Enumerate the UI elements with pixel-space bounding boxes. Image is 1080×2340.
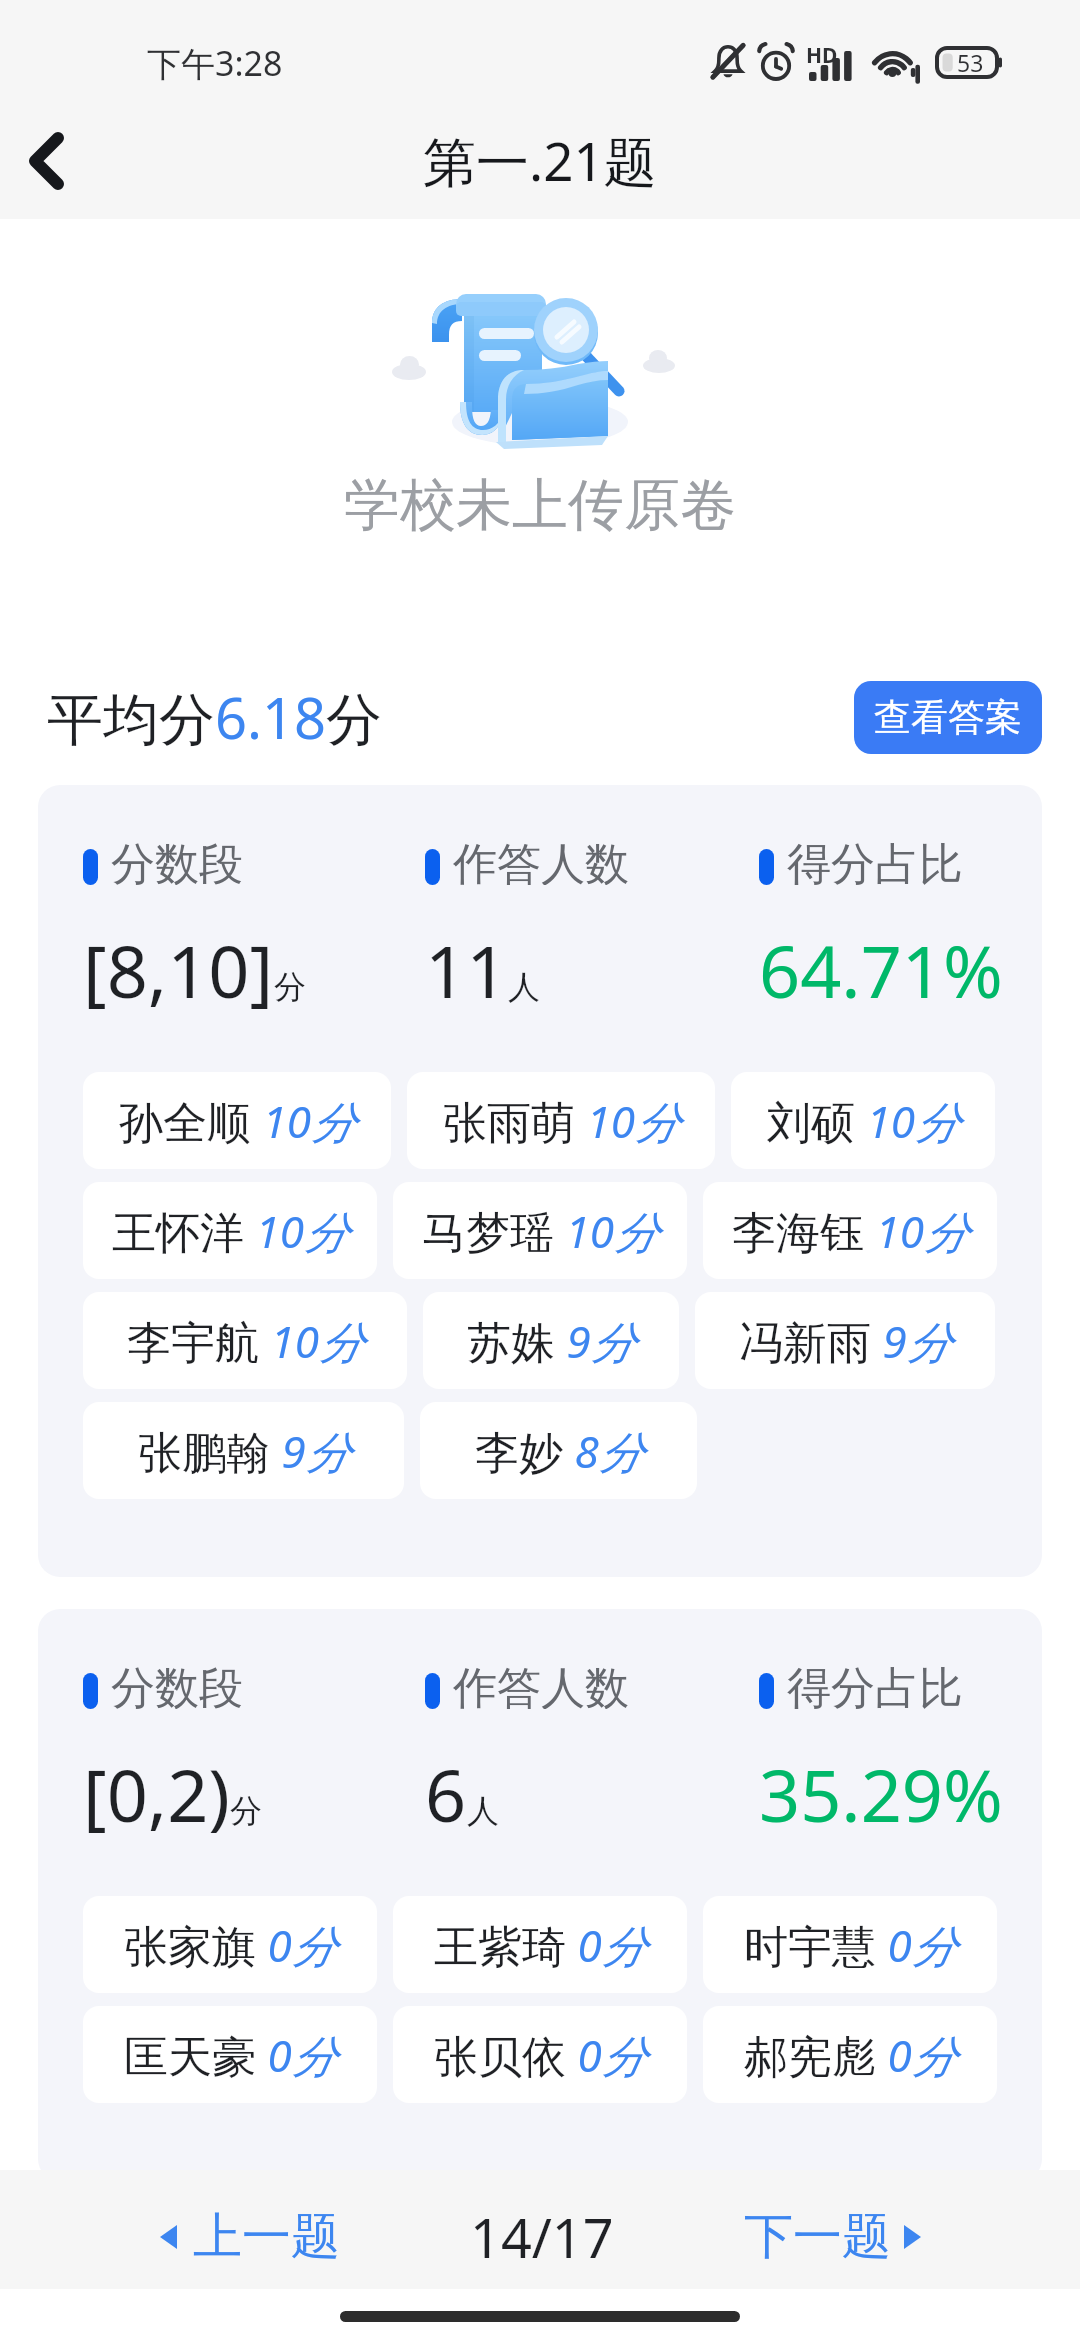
staticText: 分: [274, 967, 306, 1007]
button[interactable]: 郝宪彪 0分: [703, 2006, 997, 2103]
button[interactable]: 李宇航 10分: [83, 1292, 407, 1389]
button[interactable]: 张贝依 0分: [393, 2006, 687, 2103]
staticText: 得分占比: [787, 837, 963, 885]
staticText: 李海钰 10分: [732, 1201, 968, 1261]
staticText: 冯新雨 9分: [739, 1311, 951, 1371]
staticText: 人: [508, 967, 540, 1007]
button[interactable]: 刘硕 10分: [731, 1072, 995, 1169]
staticText: 上一题: [193, 2206, 340, 2268]
staticText: 平均分6.18分: [47, 679, 383, 755]
staticText: 李宇航 10分: [127, 1311, 363, 1371]
staticText: [8,10]: [83, 921, 274, 1019]
staticText: 得分占比: [787, 1661, 963, 1709]
button[interactable]: 孙全顺 10分: [83, 1072, 391, 1169]
staticText: 张贝依 0分: [434, 2025, 646, 2085]
button[interactable]: 上一题: [150, 2184, 350, 2290]
staticText: 64.71%: [759, 921, 1003, 1019]
button[interactable]: 查看答案: [854, 681, 1042, 754]
staticText: 作答人数: [453, 1661, 629, 1709]
button[interactable]: 冯新雨 9分: [695, 1292, 995, 1389]
staticText: 郝宪彪 0分: [744, 2025, 956, 2085]
button[interactable]: 王怀洋 10分: [83, 1182, 377, 1279]
staticText: 李妙 8分: [475, 1421, 643, 1481]
staticText: 张鹏翰 9分: [138, 1421, 350, 1481]
button[interactable]: 张家旗 0分: [83, 1896, 377, 1993]
staticText: [0,2): [83, 1745, 230, 1843]
staticText: 下一题: [744, 2206, 891, 2268]
staticText: 张雨萌 10分: [443, 1091, 679, 1151]
button[interactable]: 张鹏翰 9分: [83, 1402, 404, 1499]
staticText: 查看答案: [874, 694, 1022, 741]
staticText: 孙全顺 10分: [119, 1091, 355, 1151]
staticText: 马梦瑶 10分: [422, 1201, 658, 1261]
staticText: 匡天豪 0分: [124, 2025, 336, 2085]
staticText: 53: [957, 47, 984, 76]
button[interactable]: 苏姝 9分: [423, 1292, 679, 1389]
staticText: 11: [425, 921, 508, 1019]
staticText: 王紫琦 0分: [434, 1915, 646, 1975]
staticText: 刘硕 10分: [767, 1091, 959, 1151]
staticText: 学校未上传原卷: [344, 470, 736, 541]
staticText: 作答人数: [453, 837, 629, 885]
staticText: 第一.21题: [423, 124, 657, 196]
button[interactable]: 匡天豪 0分: [83, 2006, 377, 2103]
staticText: 人: [467, 1791, 499, 1831]
staticText: 分数段: [111, 1661, 243, 1709]
staticText: 14/17: [470, 2200, 614, 2274]
button[interactable]: 时宇慧 0分: [703, 1896, 997, 1993]
staticText: 35.29%: [759, 1745, 1003, 1843]
staticText: 苏姝 9分: [467, 1311, 635, 1371]
button[interactable]: 王紫琦 0分: [393, 1896, 687, 1993]
staticText: 时宇慧 0分: [744, 1915, 956, 1975]
button[interactable]: 下一题: [734, 2184, 931, 2290]
staticText: 下午3:28: [147, 40, 283, 86]
button[interactable]: 马梦瑶 10分: [393, 1182, 687, 1279]
staticText: 王怀洋 10分: [112, 1201, 348, 1261]
button[interactable]: 李海钰 10分: [703, 1182, 997, 1279]
button[interactable]: 张雨萌 10分: [407, 1072, 715, 1169]
staticText: 6: [425, 1745, 467, 1843]
staticText: 张家旗 0分: [124, 1915, 336, 1975]
button[interactable]: 李妙 8分: [420, 1402, 697, 1499]
button[interactable]: Back: [2, 118, 94, 210]
staticText: 分: [230, 1791, 262, 1831]
staticText: HD: [806, 41, 838, 70]
staticText: 分数段: [111, 837, 243, 885]
